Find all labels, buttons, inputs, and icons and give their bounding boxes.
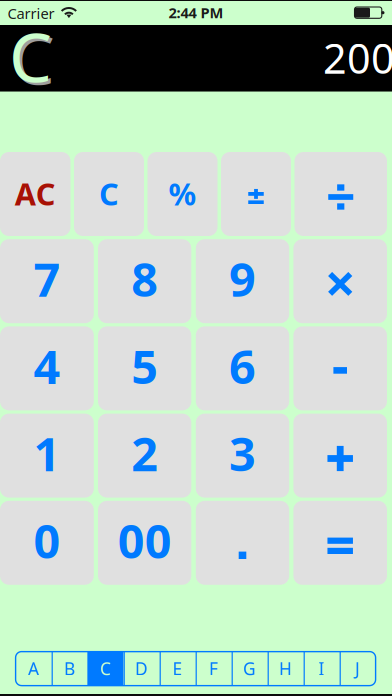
button[interactable]: Double zero [98,501,191,585]
staticText: 2 [131,422,158,484]
staticText: Carrier [7,4,54,23]
button[interactable]: A [16,652,52,686]
button[interactable]: J [340,652,376,686]
button[interactable]: C [74,152,144,236]
button[interactable]: Percent [147,152,217,236]
button[interactable]: AC [0,152,70,236]
button[interactable]: I [304,652,340,686]
button[interactable]: 3 [196,414,289,498]
button[interactable]: Equals [293,501,387,585]
staticText: 8 [131,248,158,310]
button[interactable]: Plus minus [221,152,291,236]
button[interactable]: Plus [293,414,387,498]
staticText: % [168,173,196,214]
button[interactable]: 5 [98,326,191,410]
button[interactable]: 8 [98,239,191,323]
staticText: 5 [131,335,158,397]
button[interactable]: Divide [294,152,387,236]
staticText: 3 [229,422,256,484]
staticText: E [173,657,183,680]
staticText: C [12,13,55,104]
button[interactable]: 0 [0,501,94,585]
staticText: G [243,657,256,680]
staticText: 00 [118,509,172,571]
button[interactable]: E [160,652,196,686]
staticText: 6 [229,335,256,397]
staticText: 1 [33,422,60,484]
button[interactable]: G [232,652,268,686]
staticText: B [64,657,75,680]
staticText: 2:44 PM [168,3,223,22]
button[interactable]: H [268,652,304,686]
staticText: 0 [33,509,60,571]
staticText: AC [15,173,56,214]
button[interactable]: 7 [0,239,94,323]
staticText: I [319,657,325,680]
staticText: 9 [229,248,256,310]
button[interactable]: F [196,652,232,686]
staticText: A [28,657,39,680]
button[interactable]: D [124,652,160,686]
button[interactable]: 1 [0,414,94,498]
button[interactable]: 6 [196,326,289,410]
staticText: H [279,657,292,680]
button[interactable]: 9 [196,239,289,323]
staticText: C [99,173,119,214]
staticText: 4 [33,335,60,397]
button[interactable]: Multiply [293,239,387,323]
button[interactable]: 2 [98,414,191,498]
staticText: F [209,657,218,680]
staticText: C [9,11,52,101]
staticText: D [135,657,148,680]
button[interactable]: C [88,652,124,686]
button[interactable]: Minus [293,326,387,410]
staticText: J [355,657,360,680]
button[interactable]: B [52,652,88,686]
staticText: 200 [323,30,392,85]
staticText: C [100,657,111,680]
button[interactable]: Decimal point [196,501,289,585]
button[interactable]: 4 [0,326,94,410]
staticText: 7 [33,248,60,310]
